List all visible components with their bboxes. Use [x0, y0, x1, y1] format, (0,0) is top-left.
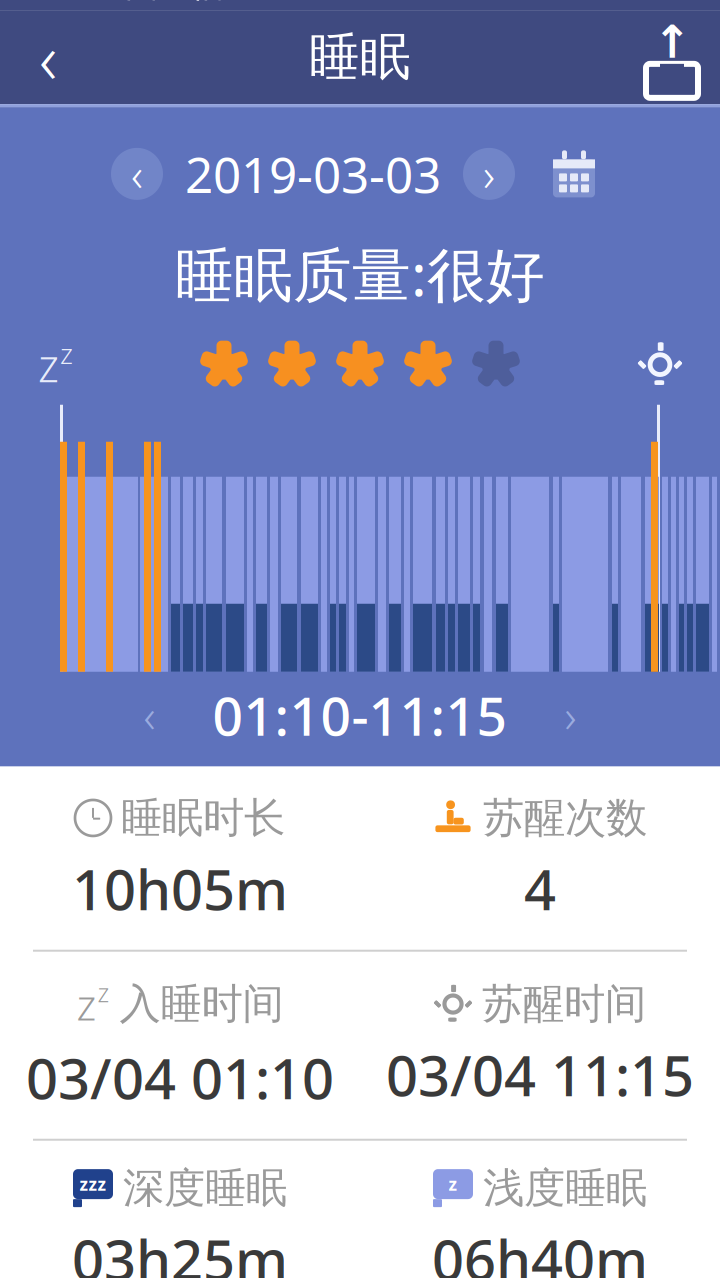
staticText: z [38, 334, 59, 395]
staticText: 苏醒次数 [483, 793, 647, 843]
staticText: 03/04 11:15 [386, 1037, 694, 1112]
staticText: 睡眠质量:很好 [175, 235, 545, 312]
staticText: 睡眠 [309, 26, 411, 88]
button[interactable]: 返回 [0, 10, 96, 104]
staticText: z [60, 334, 73, 372]
button[interactable]: 前一天 [111, 148, 163, 200]
staticText: 06h40m [432, 1221, 648, 1278]
staticText: › [483, 144, 495, 204]
staticText: 03/04 01:10 [26, 1040, 334, 1115]
staticText: 苏醒时间 [482, 979, 646, 1029]
staticText: ‹ [143, 685, 155, 745]
staticText: 睡眠时长 [121, 793, 285, 843]
staticText: zzz [79, 1173, 106, 1196]
staticText: 01:10-11:15 [212, 680, 507, 750]
staticText: 2019-03-03 [185, 141, 441, 207]
staticText: 入睡时间 [119, 979, 283, 1029]
staticText: z [448, 1173, 457, 1196]
staticText: 中国电信 [92, 0, 224, 6]
button[interactable]: 下一段 [535, 685, 605, 745]
button[interactable]: 分享 [624, 10, 720, 104]
button[interactable]: 后一天 [463, 148, 515, 200]
staticText: ↑ [653, 16, 691, 68]
staticText: ‹ [131, 144, 143, 204]
button[interactable]: 日历 [539, 146, 609, 202]
staticText: z [97, 976, 109, 1009]
staticText: › [564, 685, 576, 745]
staticText: ‹ [39, 11, 57, 103]
button[interactable]: 上一段 [114, 685, 184, 745]
staticText: 4 [524, 851, 556, 926]
staticText: 03h25m [72, 1221, 288, 1278]
staticText: 浅度睡眠 [483, 1163, 647, 1213]
staticText: z [76, 976, 96, 1032]
staticText: 10h05m [72, 851, 288, 926]
staticText: 深度睡眠 [123, 1163, 287, 1213]
